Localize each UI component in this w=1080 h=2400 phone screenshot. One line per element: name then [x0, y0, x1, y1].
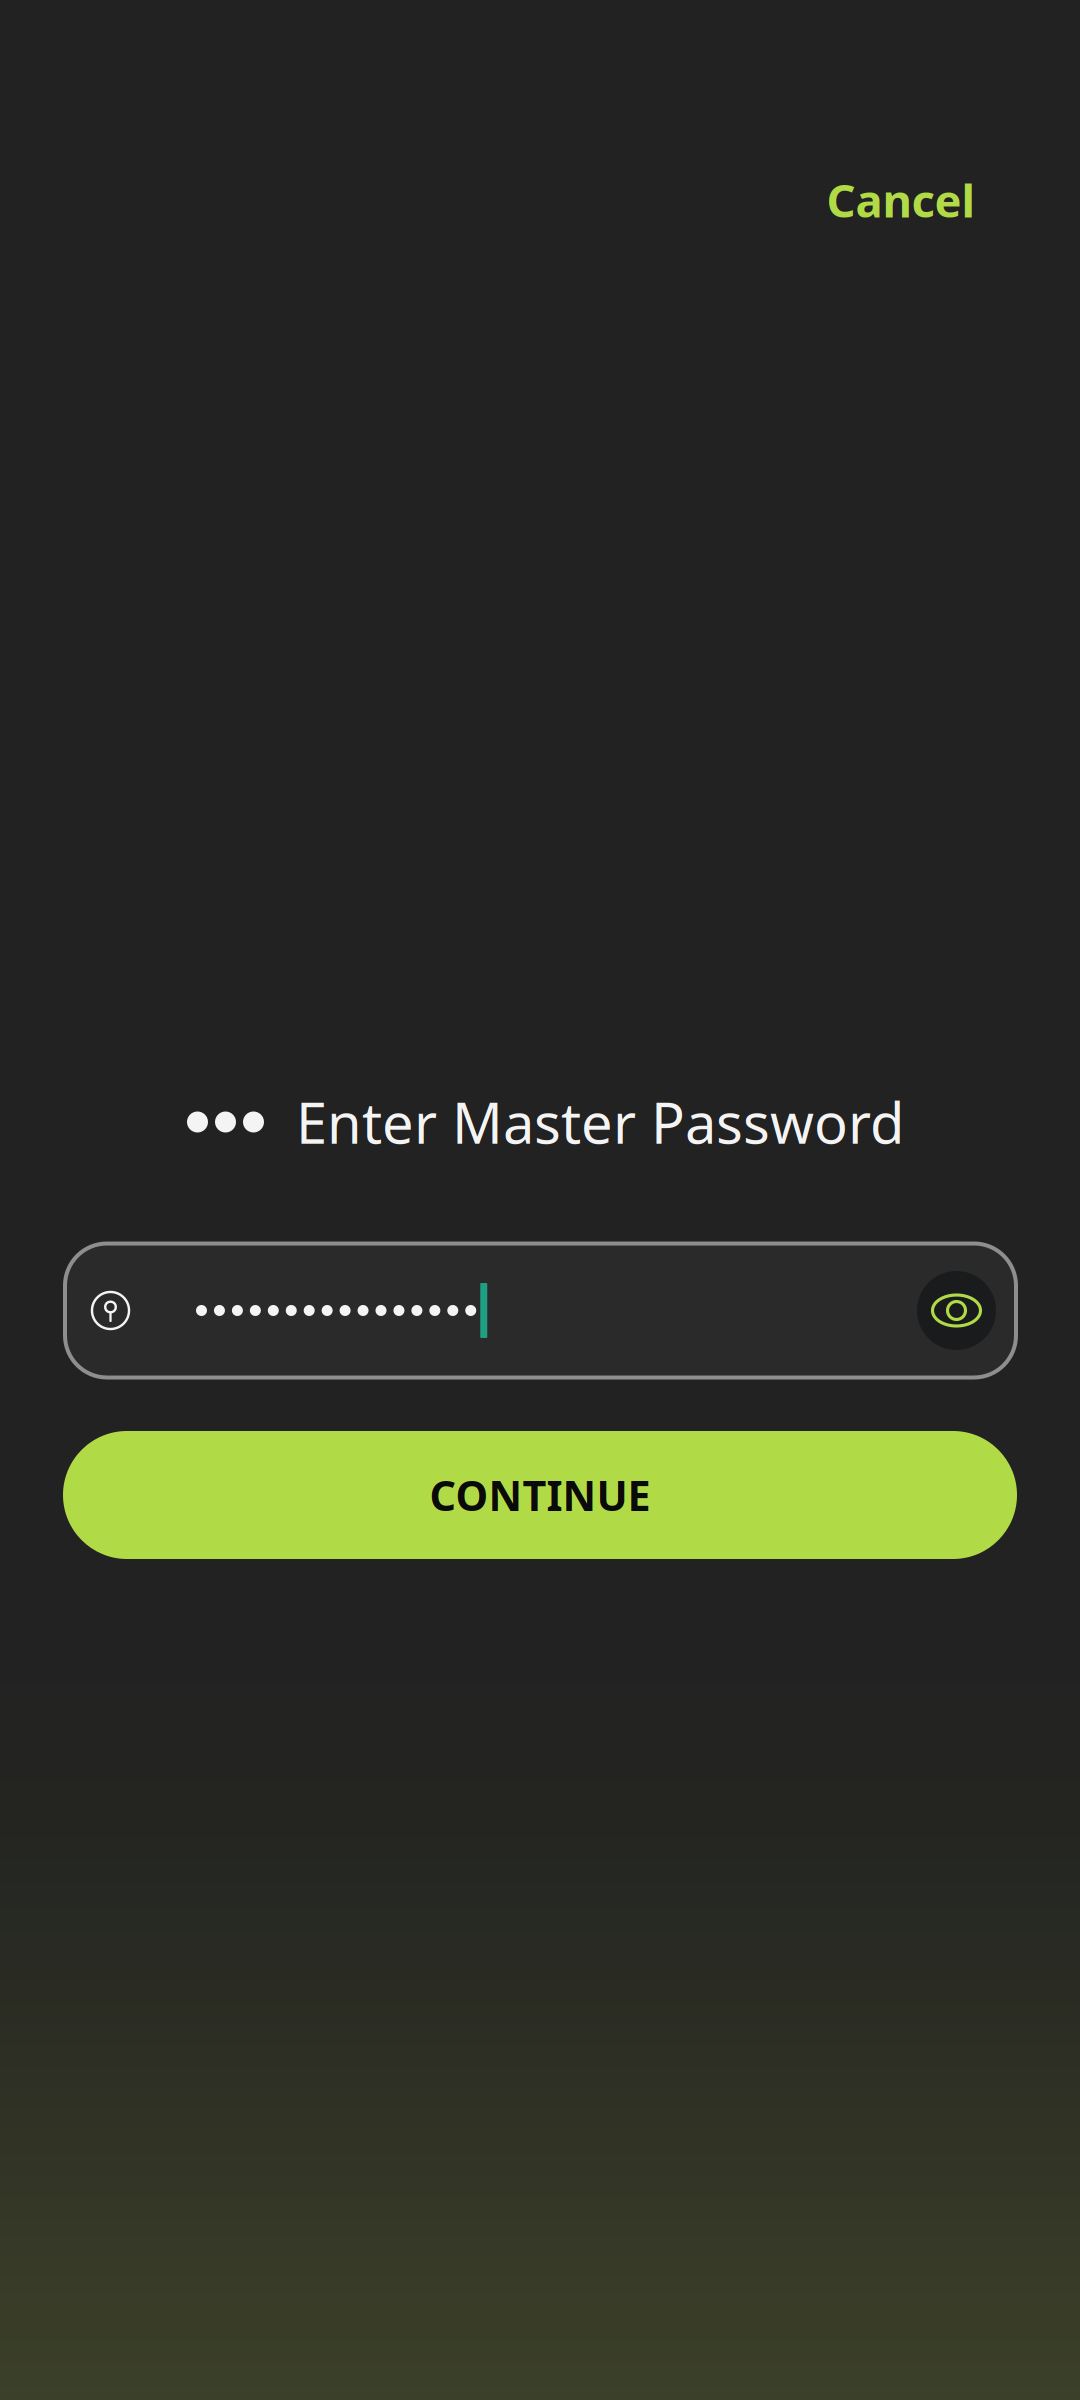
button[interactable]: Master password: [65, 1243, 1016, 1377]
staticText: CONTINUE: [429, 1468, 650, 1522]
button[interactable]: Cancel: [794, 145, 1008, 255]
staticText: Enter Master Password: [296, 1085, 904, 1159]
button[interactable]: CONTINUE: [63, 1431, 1017, 1559]
staticText: Cancel: [826, 170, 975, 230]
button[interactable]: Show password: [917, 1271, 996, 1350]
